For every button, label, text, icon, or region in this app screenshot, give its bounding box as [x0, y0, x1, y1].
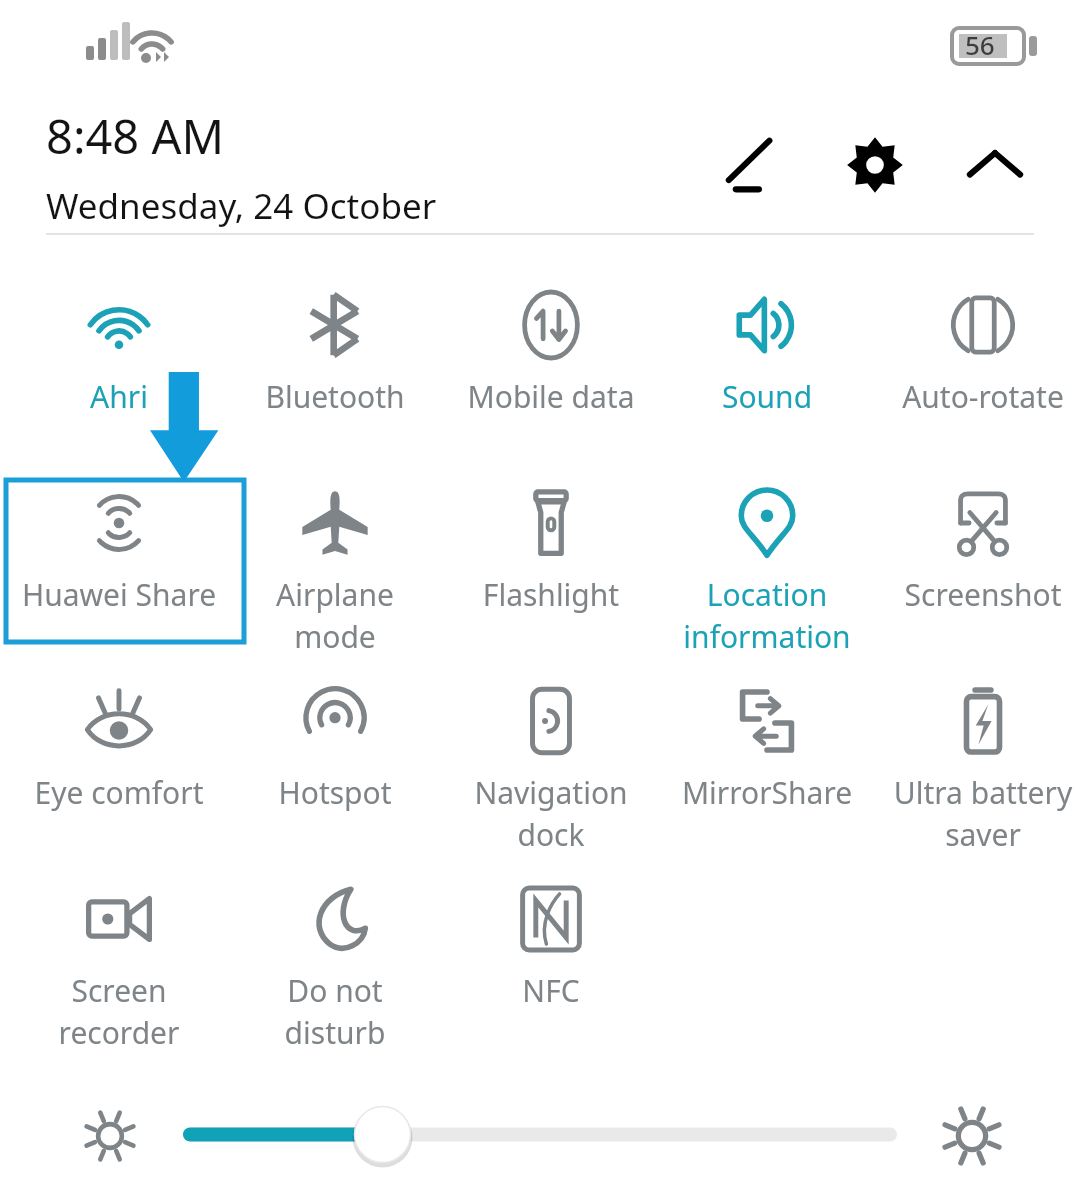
button[interactable]: Flashlight: [443, 490, 659, 615]
staticText: NFC: [451, 970, 651, 1011]
staticText: Auto-rotate: [883, 376, 1080, 417]
staticText: Bluetooth: [235, 376, 435, 417]
button[interactable]: Mobile data: [443, 292, 659, 417]
button[interactable]: Lower brightness: [72, 1098, 148, 1174]
button[interactable]: Do not disturb: [227, 886, 443, 1053]
staticText: MirrorShare: [667, 772, 867, 813]
button[interactable]: Ultra battery saver: [875, 688, 1080, 855]
staticText: 8:48 AM: [46, 104, 225, 168]
button[interactable]: Ahri: [11, 292, 227, 417]
button[interactable]: Screenshot: [875, 490, 1080, 615]
button[interactable]: Airplane mode: [227, 490, 443, 657]
staticText: Hotspot: [235, 772, 435, 813]
button[interactable]: Navigation dock: [443, 688, 659, 855]
button[interactable]: MirrorShare: [659, 688, 875, 813]
button[interactable]: Sound: [659, 292, 875, 417]
staticText: Ahri: [19, 376, 219, 417]
staticText: Wednesday, 24 October: [46, 182, 437, 230]
staticText: Location information: [667, 574, 867, 657]
button[interactable]: Location information: [659, 490, 875, 657]
staticText: Huawei Share: [19, 574, 219, 615]
staticText: Mobile data: [451, 376, 651, 417]
button[interactable]: [180, 1100, 900, 1172]
staticText: Do not disturb: [235, 970, 435, 1053]
button[interactable]: Bluetooth: [227, 292, 443, 417]
staticText: Navigation dock: [451, 772, 651, 855]
button[interactable]: Collapse: [949, 119, 1041, 211]
button[interactable]: Edit: [706, 119, 798, 211]
button[interactable]: Settings: [829, 119, 921, 211]
staticText: Eye comfort: [19, 772, 219, 813]
staticText: Flashlight: [451, 574, 651, 615]
staticText: 56: [965, 27, 995, 62]
button[interactable]: Raise brightness: [934, 1098, 1010, 1174]
button[interactable]: Huawei Share: [11, 490, 227, 615]
staticText: Airplane mode: [235, 574, 435, 657]
staticText: Screenshot: [883, 574, 1080, 615]
button[interactable]: NFC: [443, 886, 659, 1011]
button[interactable]: Screen recorder: [11, 886, 227, 1053]
button[interactable]: Eye comfort: [11, 688, 227, 813]
button[interactable]: Hotspot: [227, 688, 443, 813]
staticText: Ultra battery saver: [883, 772, 1080, 855]
button[interactable]: Auto-rotate: [875, 292, 1080, 417]
staticText: Sound: [667, 376, 867, 417]
staticText: Screen recorder: [19, 970, 219, 1053]
